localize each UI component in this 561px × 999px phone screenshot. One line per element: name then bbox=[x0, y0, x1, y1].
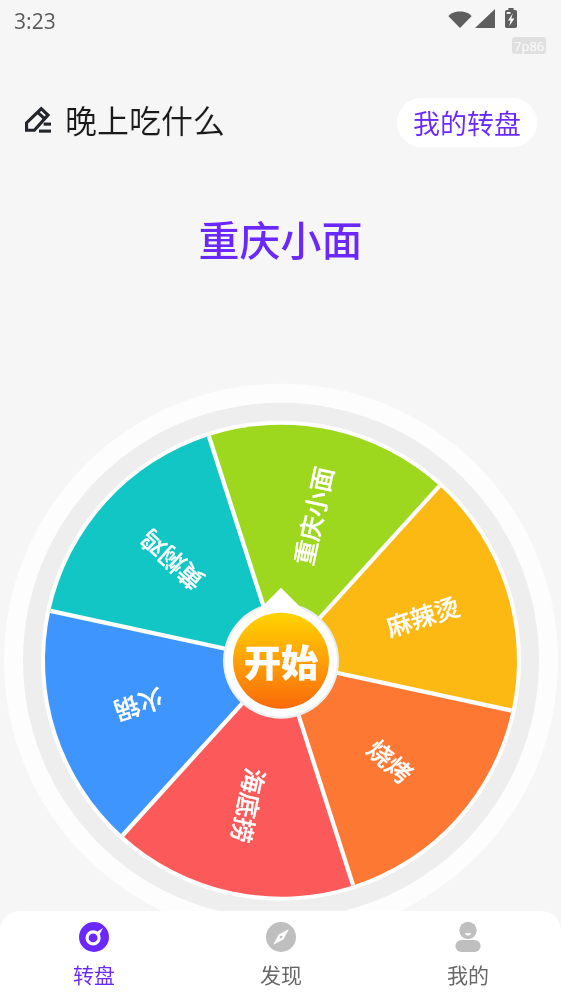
button[interactable]: 晚上吃什么 bbox=[22, 94, 228, 144]
staticText: 我的 bbox=[447, 959, 489, 989]
staticText: 发现 bbox=[260, 959, 302, 989]
button[interactable]: 我的转盘 bbox=[397, 98, 537, 147]
staticText: 7p86 bbox=[514, 37, 545, 54]
staticText: 转盘 bbox=[73, 959, 115, 989]
staticText: 晚上吃什么 bbox=[65, 96, 226, 142]
button[interactable]: 转盘 bbox=[0, 911, 187, 999]
staticText: 重庆小面 bbox=[0, 208, 561, 267]
button[interactable]: 我的 bbox=[374, 911, 561, 999]
button[interactable]: 发现 bbox=[187, 911, 374, 999]
staticText: 3:23 bbox=[14, 7, 56, 36]
staticText: 我的转盘 bbox=[413, 103, 521, 142]
button[interactable] bbox=[0, 0, 561, 999]
